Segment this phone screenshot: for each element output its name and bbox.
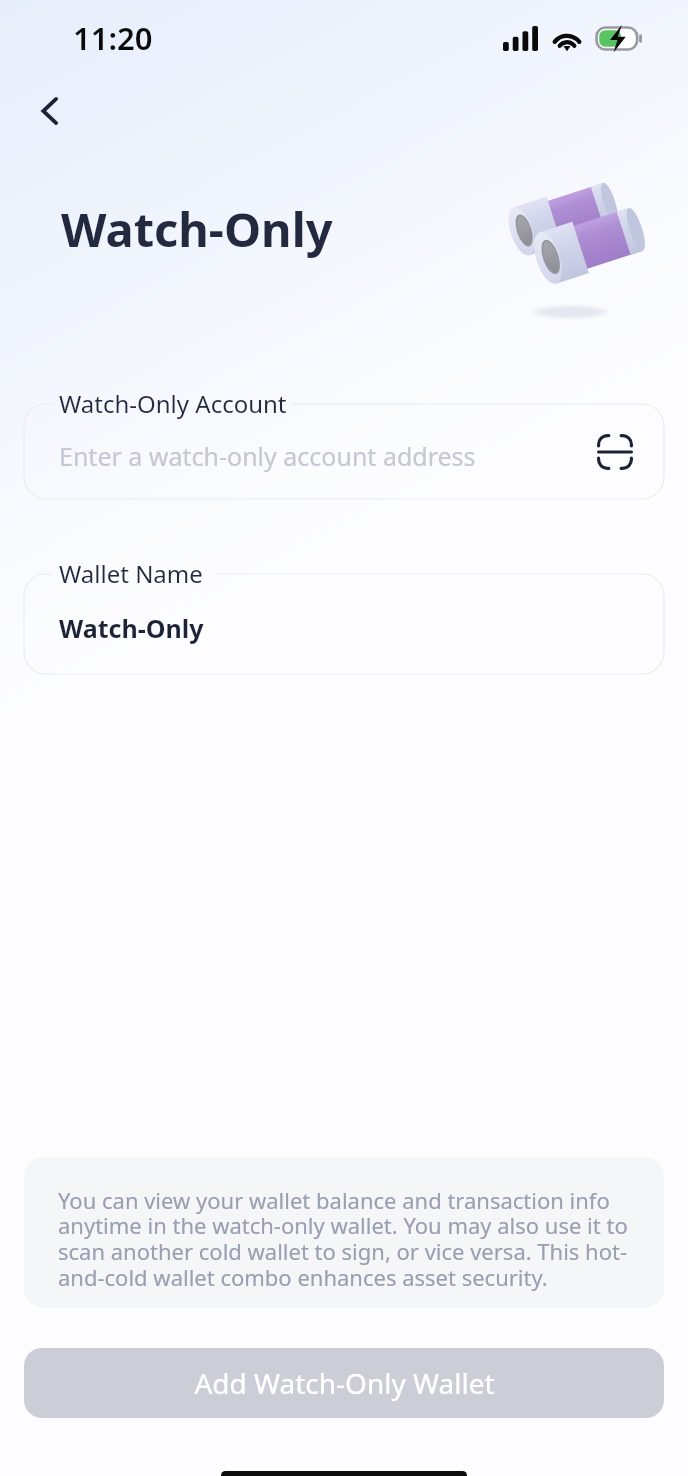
- staticText: 11:20: [73, 17, 153, 59]
- button[interactable]: Back: [22, 83, 78, 139]
- staticText: Watch-Only Account: [59, 387, 287, 420]
- button[interactable]: Scan QR code: [586, 423, 644, 481]
- staticText: You can view your wallet balance and tra…: [58, 1185, 654, 1293]
- staticText: Wallet Name: [59, 557, 203, 590]
- button[interactable]: Add Watch-Only Wallet: [24, 1348, 664, 1418]
- staticText: Enter a watch-only account address: [59, 439, 476, 473]
- button[interactable]: Watch-Only Account: [24, 404, 664, 499]
- button[interactable]: Wallet Name: [24, 574, 664, 674]
- staticText: Watch-Only: [59, 611, 204, 645]
- staticText: Add Watch-Only Wallet: [194, 1364, 495, 1402]
- staticText: Watch-Only: [61, 197, 333, 261]
